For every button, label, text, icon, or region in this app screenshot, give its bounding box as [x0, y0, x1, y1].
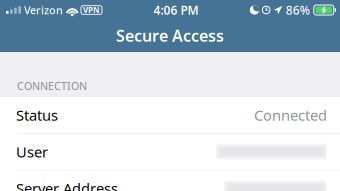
button[interactable]: User	[0, 134, 340, 170]
staticText: User	[16, 142, 48, 161]
button[interactable]: Status	[0, 97, 340, 134]
staticText: 4:06 PM	[153, 2, 198, 18]
staticText: Connected	[254, 105, 327, 125]
staticText: VPN	[83, 5, 100, 15]
button[interactable]: Server Address	[0, 170, 340, 191]
staticText: Server Address	[16, 179, 118, 191]
staticText: 86%	[286, 2, 310, 18]
staticText: Verizon	[24, 3, 63, 17]
staticText: CONNECTION	[17, 79, 87, 93]
staticText: Secure Access	[116, 25, 224, 46]
staticText: Status	[16, 105, 58, 125]
